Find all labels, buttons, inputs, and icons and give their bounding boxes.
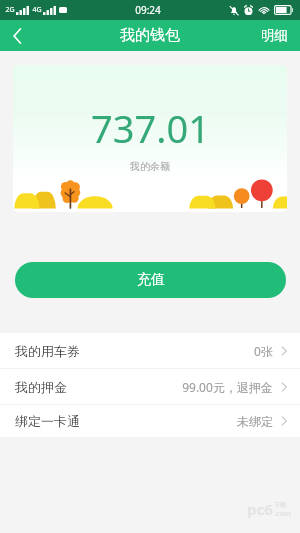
staticText: 我的余额 [130,160,170,173]
staticText: 99.00元，退押金 [182,379,273,395]
staticText: 0张 [254,343,273,359]
staticText: .com [274,509,291,519]
staticText: 充值 [137,271,165,289]
button[interactable]: 我的用车券 [0,333,300,368]
button[interactable]: 充值 [15,262,286,298]
staticText: 我的用车券 [15,343,80,359]
button[interactable]: 明细 [249,20,300,51]
staticText: 下载 [274,501,286,509]
staticText: 09:24 [135,3,161,17]
button[interactable]: 我的押金 [0,369,300,404]
staticText: 我的押金 [15,379,67,395]
staticText: 未绑定 [237,414,273,429]
button[interactable]: 绑定一卡通 [0,405,300,437]
staticText: 737.01 [91,102,210,154]
staticText: pc6 [247,499,273,519]
staticText: 明细 [261,27,288,44]
staticText: 我的钱包 [120,26,180,45]
staticText: 绑定一卡通 [15,413,80,429]
button[interactable]: Back [0,20,36,51]
staticText: 4G [32,5,42,15]
staticText: 2G [5,5,15,15]
